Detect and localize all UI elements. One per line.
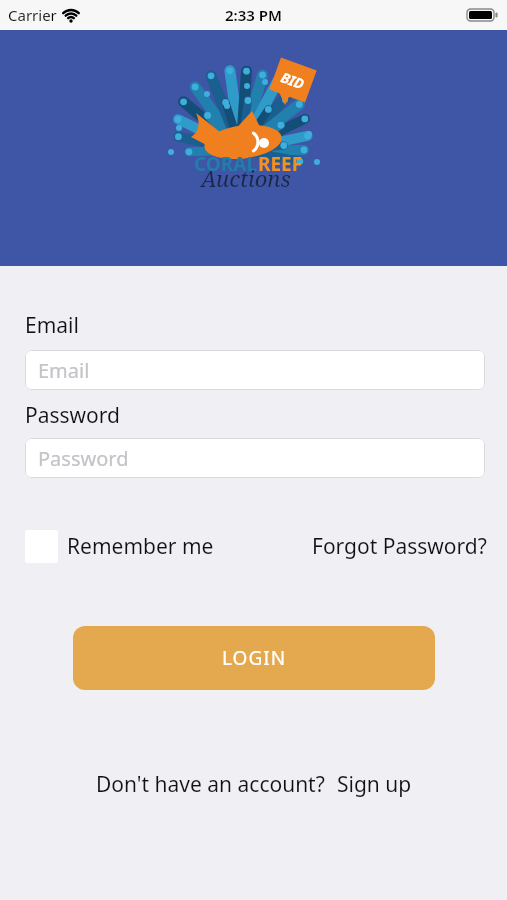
button[interactable]: Password (25, 438, 485, 478)
button[interactable]: Forgot Password? (312, 532, 487, 561)
staticText: Don't have an account? (96, 770, 325, 799)
button[interactable]: Email (25, 350, 485, 390)
staticText: CORAL (194, 151, 258, 177)
staticText: BID (278, 67, 307, 93)
button[interactable]: Sign up (337, 770, 412, 799)
staticText: Remember me (67, 532, 214, 561)
staticText: LOGIN (222, 645, 287, 671)
staticText: Email (38, 357, 90, 384)
staticText: Carrier (8, 5, 57, 25)
staticText: REEF (258, 151, 303, 177)
button[interactable]: LOGIN (73, 626, 435, 690)
staticText: 2:33 PM (225, 5, 282, 25)
staticText: Password (25, 401, 120, 430)
staticText: Auctions (201, 163, 291, 193)
staticText: Password (38, 445, 129, 472)
staticText: Email (25, 311, 79, 340)
